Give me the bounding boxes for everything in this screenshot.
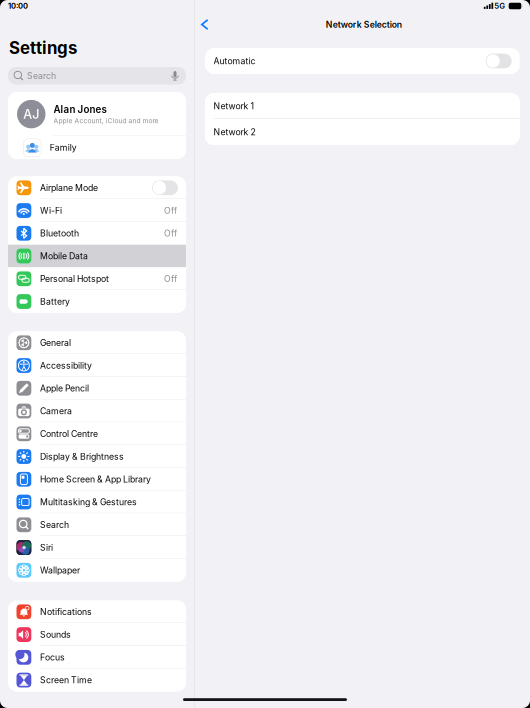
- staticText: Personal Hotspot: [40, 273, 109, 284]
- staticText: Automatic: [213, 56, 255, 66]
- staticText: Camera: [40, 406, 72, 416]
- button[interactable]: Sounds: [8, 623, 186, 646]
- button[interactable]: Screen Time: [8, 669, 186, 691]
- staticText: Battery: [40, 296, 70, 307]
- staticText: Family: [50, 142, 77, 153]
- staticText: AJ: [23, 106, 39, 122]
- staticText: Sounds: [40, 629, 71, 640]
- button[interactable]: Accessibility: [8, 354, 186, 377]
- staticText: Network 1: [213, 101, 254, 111]
- staticText: Multitasking & Gestures: [40, 497, 137, 507]
- staticText: Off: [164, 228, 177, 238]
- staticText: Mobile Data: [40, 251, 88, 261]
- staticText: Apple Account, iCloud and more: [53, 117, 158, 125]
- button[interactable]: Control Centre: [8, 422, 186, 445]
- button[interactable]: Wi-Fi: [8, 199, 186, 222]
- staticText: Settings: [9, 38, 77, 58]
- button[interactable]: Family: [8, 136, 186, 159]
- button[interactable]: Camera: [8, 400, 186, 422]
- button[interactable]: Back: [196, 13, 214, 35]
- button[interactable]: Wallpaper: [8, 559, 186, 582]
- staticText: Screen Time: [40, 675, 92, 685]
- button[interactable]: Battery: [8, 290, 186, 313]
- staticText: Network 2: [213, 127, 255, 137]
- button[interactable]: Siri: [8, 536, 186, 559]
- staticText: 10:00: [8, 1, 28, 10]
- staticText: Bluetooth: [40, 228, 79, 238]
- button[interactable]: Bluetooth: [8, 222, 186, 245]
- staticText: Siri: [40, 542, 53, 553]
- button[interactable]: Apple Pencil: [8, 377, 186, 400]
- button[interactable]: Mobile Data: [8, 245, 186, 267]
- staticText: 5G: [494, 1, 505, 11]
- button[interactable]: General: [8, 331, 186, 354]
- button[interactable]: Personal Hotspot: [8, 267, 186, 290]
- button[interactable]: AJ: [8, 92, 186, 136]
- button[interactable]: Notifications: [8, 600, 186, 623]
- button[interactable]: Automatic: [486, 54, 512, 68]
- button[interactable]: Multitasking & Gestures: [8, 491, 186, 513]
- button[interactable]: Airplane Mode: [8, 176, 186, 199]
- button[interactable]: Network 2: [205, 119, 520, 145]
- staticText: Home Screen & App Library: [40, 474, 151, 484]
- staticText: Wi-Fi: [40, 205, 62, 216]
- staticText: Off: [164, 205, 177, 216]
- staticText: Notifications: [40, 607, 92, 617]
- staticText: Accessibility: [40, 360, 92, 371]
- staticText: Search: [40, 519, 69, 530]
- button[interactable]: Display & Brightness: [8, 445, 186, 468]
- staticText: Wallpaper: [40, 565, 80, 575]
- staticText: Control Centre: [40, 428, 98, 439]
- staticText: Network Selection: [326, 19, 402, 30]
- button[interactable]: Home Screen & App Library: [8, 468, 186, 491]
- button[interactable]: Network 1: [205, 93, 520, 119]
- staticText: Search: [27, 70, 56, 81]
- staticText: Display & Brightness: [40, 451, 124, 462]
- staticText: General: [40, 337, 71, 348]
- button[interactable]: Search: [8, 513, 186, 536]
- staticText: Alan Jones: [53, 103, 106, 115]
- staticText: Airplane Mode: [40, 182, 98, 193]
- staticText: Focus: [40, 652, 65, 663]
- button[interactable]: Focus: [8, 646, 186, 669]
- staticText: Apple Pencil: [40, 383, 89, 393]
- staticText: Off: [164, 273, 177, 284]
